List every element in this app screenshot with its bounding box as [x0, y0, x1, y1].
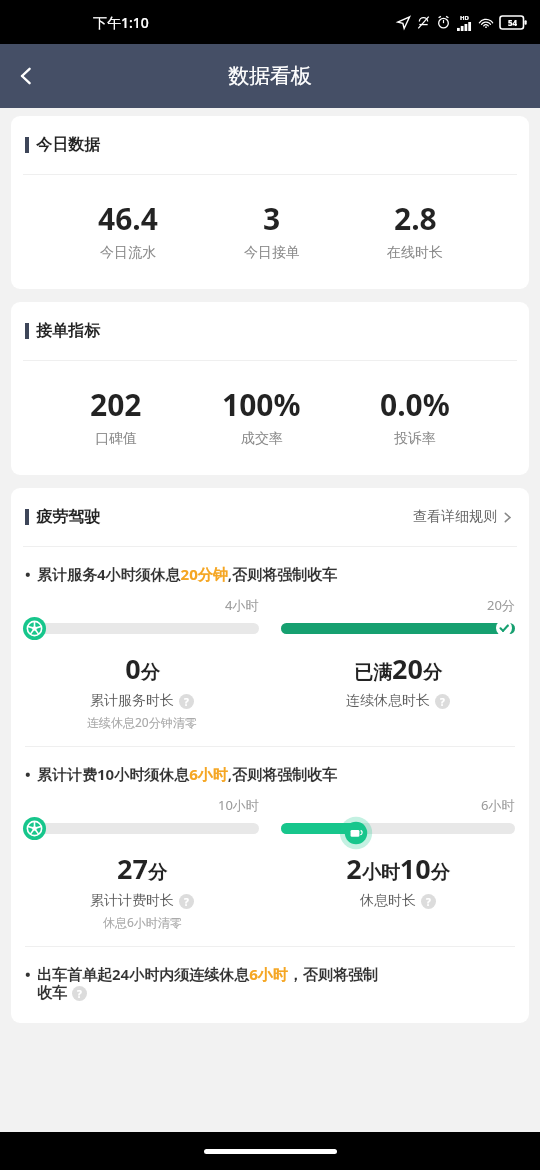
- staticText: 10小时: [218, 796, 259, 814]
- staticText: 46.4: [98, 198, 158, 239]
- staticText: 0.0%: [380, 384, 450, 425]
- staticText: ?: [184, 895, 189, 909]
- button[interactable]: 说明: [179, 894, 194, 909]
- staticText: 在线时长: [387, 244, 443, 262]
- button[interactable]: 说明: [179, 694, 194, 709]
- staticText: 202: [90, 384, 142, 425]
- staticText: 累计服务时长: [90, 692, 174, 710]
- staticText: ?: [440, 695, 445, 709]
- staticText: 下午1:10: [93, 13, 149, 32]
- staticText: 接单指标: [36, 321, 100, 341]
- staticText: 投诉率: [394, 430, 436, 448]
- staticText: 收车: [37, 984, 67, 1003]
- staticText: 今日流水: [100, 244, 156, 262]
- staticText: 已满20分: [354, 650, 442, 687]
- staticText: 疲劳驾驶: [36, 507, 100, 527]
- staticText: 6小时: [481, 796, 515, 814]
- staticText: 20分: [487, 596, 515, 614]
- staticText: 3: [263, 198, 281, 239]
- staticText: 成交率: [241, 430, 283, 448]
- staticText: 今日数据: [36, 135, 100, 155]
- staticText: 今日接单: [244, 244, 300, 262]
- staticText: 口碑值: [95, 430, 137, 448]
- staticText: 100%: [222, 384, 301, 425]
- staticText: 数据看板: [228, 63, 312, 89]
- staticText: 54: [508, 17, 518, 28]
- staticText: HD: [460, 14, 469, 22]
- staticText: •: [25, 964, 31, 984]
- button[interactable]: 说明: [435, 694, 450, 709]
- staticText: 休息时长: [360, 892, 416, 910]
- staticText: 0分: [125, 650, 160, 687]
- staticText: 2小时10分: [346, 850, 450, 887]
- staticText: ?: [77, 987, 82, 1001]
- staticText: 累计计费10小时须休息6小时,否则将强制收车: [37, 764, 338, 784]
- staticText: 累计计费时长: [90, 892, 174, 910]
- staticText: ?: [184, 695, 189, 709]
- staticText: 连续休息20分钟清零: [87, 714, 197, 730]
- staticText: 出车首单起24小时内须连续休息6小时，否则将强制: [37, 964, 378, 984]
- staticText: ?: [426, 895, 431, 909]
- staticText: •: [25, 564, 31, 584]
- staticText: 累计服务4小时须休息20分钟,否则将强制收车: [37, 564, 338, 584]
- button[interactable]: 说明: [72, 986, 87, 1001]
- staticText: 2.8: [394, 198, 437, 239]
- staticText: 27分: [117, 850, 167, 887]
- staticText: 查看详细规则: [413, 508, 497, 526]
- staticText: •: [25, 764, 31, 784]
- button[interactable]: Back: [0, 50, 52, 102]
- button[interactable]: 说明: [421, 894, 436, 909]
- staticText: 4小时: [225, 596, 259, 614]
- staticText: 休息6小时清零: [103, 914, 182, 930]
- staticText: 连续休息时长: [346, 692, 430, 710]
- button[interactable]: 查看详细规则: [411, 502, 515, 532]
